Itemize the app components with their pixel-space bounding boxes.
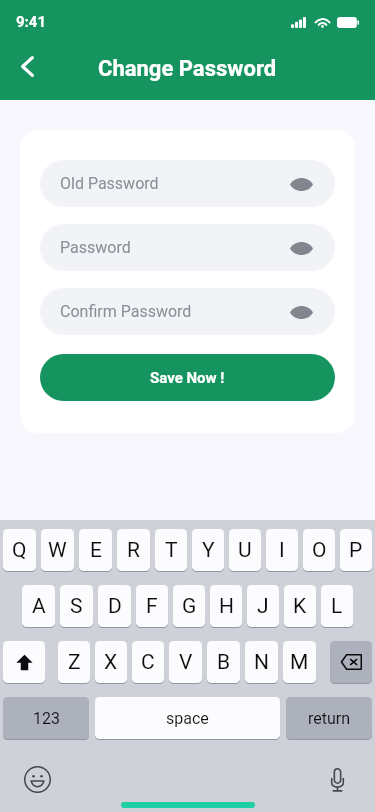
staticText: Save Now ! (150, 369, 225, 387)
button[interactable]: X (95, 641, 127, 683)
staticText: J (257, 594, 269, 619)
button[interactable]: Z (58, 641, 90, 683)
staticText: Old Password (60, 174, 159, 193)
button[interactable]: Show password (289, 174, 313, 194)
staticText: G (182, 594, 197, 619)
button[interactable]: Back (0, 39, 54, 93)
staticText: R (127, 538, 140, 563)
button[interactable]: L (321, 585, 353, 627)
button[interactable]: Emoji keyboard (21, 763, 54, 796)
button[interactable]: I (266, 529, 298, 571)
button[interactable]: Q (3, 529, 36, 571)
staticText: E (90, 538, 102, 563)
button[interactable]: Save Now ! (40, 354, 335, 401)
button[interactable]: R (117, 529, 150, 571)
button[interactable]: 123 (3, 697, 89, 739)
staticText: M (290, 650, 309, 675)
button[interactable]: D (98, 585, 131, 627)
button[interactable]: G (173, 585, 205, 627)
staticText: Password (60, 238, 131, 257)
staticText: T (165, 538, 178, 563)
button[interactable]: S (60, 585, 93, 627)
staticText: 123 (33, 709, 60, 728)
button[interactable]: T (155, 529, 187, 571)
button[interactable]: space (95, 697, 280, 739)
staticText: Y (202, 538, 215, 563)
staticText: F (146, 594, 158, 619)
button[interactable]: F (136, 585, 168, 627)
staticText: P (349, 538, 363, 563)
staticText: Z (68, 650, 81, 675)
staticText: 9:41 (16, 13, 47, 31)
staticText: N (254, 650, 269, 675)
button[interactable]: Backspace (330, 641, 372, 683)
button[interactable]: Y (192, 529, 224, 571)
staticText: A (32, 594, 46, 619)
staticText: L (331, 594, 343, 619)
staticText: X (104, 650, 118, 675)
button[interactable]: O (303, 529, 335, 571)
button[interactable]: H (210, 585, 242, 627)
button[interactable]: Password (40, 224, 335, 271)
button[interactable]: W (41, 529, 74, 571)
button[interactable]: K (284, 585, 316, 627)
staticText: U (238, 538, 252, 563)
button[interactable]: A (22, 585, 55, 627)
button[interactable]: B (207, 641, 240, 683)
staticText: return (308, 709, 351, 728)
button[interactable]: C (132, 641, 164, 683)
staticText: D (108, 594, 122, 619)
staticText: W (48, 538, 67, 563)
staticText: space (166, 709, 209, 728)
button[interactable]: Shift (3, 641, 45, 683)
staticText: O (312, 538, 327, 563)
button[interactable]: P (340, 529, 372, 571)
staticText: H (219, 594, 234, 619)
button[interactable]: Confirm Password (40, 288, 335, 335)
button[interactable]: Voice input (321, 763, 354, 796)
staticText: Q (12, 538, 27, 563)
staticText: Confirm Password (60, 302, 192, 321)
staticText: B (217, 650, 231, 675)
button[interactable]: U (229, 529, 261, 571)
button[interactable]: V (169, 641, 202, 683)
staticText: Change Password (98, 56, 277, 82)
button[interactable]: Old Password (40, 160, 335, 207)
staticText: K (293, 594, 307, 619)
button[interactable]: E (79, 529, 112, 571)
button[interactable]: Show password (289, 302, 313, 322)
button[interactable]: Show password (289, 238, 313, 258)
button[interactable]: N (245, 641, 278, 683)
staticText: I (279, 538, 285, 563)
button[interactable]: J (247, 585, 279, 627)
staticText: C (141, 650, 155, 675)
staticText: S (70, 594, 83, 619)
button[interactable]: M (283, 641, 316, 683)
button[interactable]: return (286, 697, 372, 739)
staticText: V (179, 650, 193, 675)
